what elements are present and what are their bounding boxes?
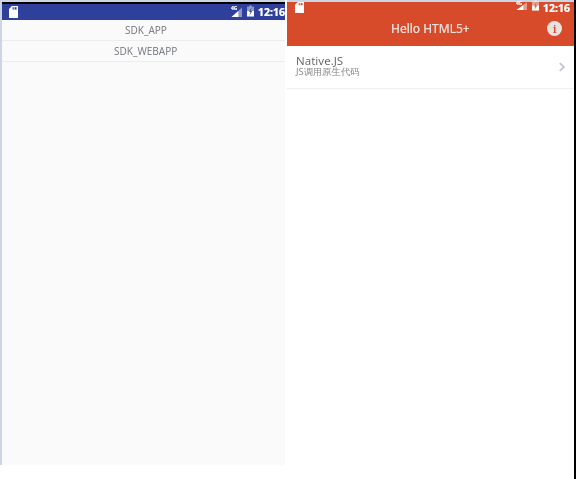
staticText: 4G bbox=[231, 5, 238, 12]
staticText: 12:16 bbox=[258, 5, 285, 19]
button[interactable]: SDK_APP bbox=[0, 20, 285, 40]
staticText: SDK_WEBAPP bbox=[114, 44, 178, 58]
button[interactable]: SDK_WEBAPP bbox=[0, 41, 285, 61]
staticText: 4G bbox=[516, 0, 523, 7]
staticText: Hello HTML5+ bbox=[391, 20, 470, 36]
button[interactable]: About bbox=[545, 19, 563, 37]
staticText: JS调用原生代码 bbox=[296, 65, 360, 78]
staticText: i bbox=[553, 22, 557, 36]
staticText: SDK_APP bbox=[125, 23, 167, 37]
staticText: 12:16 bbox=[543, 1, 570, 12]
button[interactable]: Native.JS bbox=[287, 46, 574, 88]
staticText: Native.JS bbox=[296, 53, 344, 69]
